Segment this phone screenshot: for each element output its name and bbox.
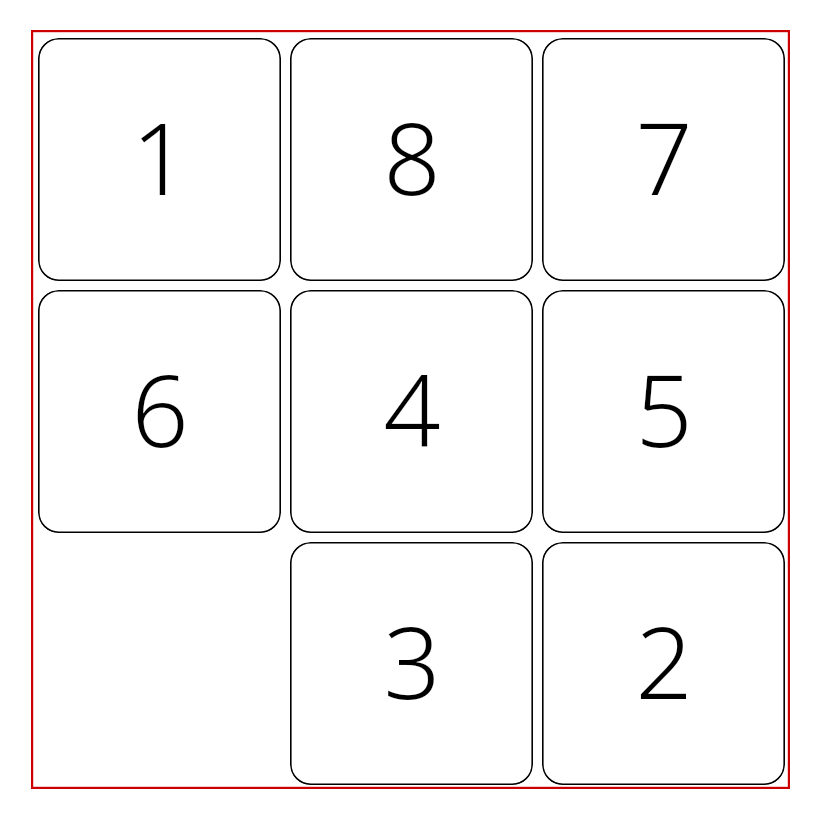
staticText: 8 xyxy=(383,88,441,224)
button[interactable]: 1 xyxy=(38,38,281,281)
staticText: 2 xyxy=(635,592,693,728)
staticText: 7 xyxy=(635,88,693,224)
staticText: 4 xyxy=(383,340,441,476)
staticText: 6 xyxy=(131,340,189,476)
button[interactable]: 3 xyxy=(290,542,533,785)
button[interactable]: 4 xyxy=(290,290,533,533)
staticText: 3 xyxy=(383,592,441,728)
staticText: 5 xyxy=(635,340,693,476)
button[interactable]: 8 xyxy=(290,38,533,281)
button[interactable]: 6 xyxy=(38,290,281,533)
button[interactable]: 5 xyxy=(542,290,785,533)
button[interactable]: 7 xyxy=(542,38,785,281)
button[interactable]: 2 xyxy=(542,542,785,785)
staticText: 1 xyxy=(131,88,189,224)
